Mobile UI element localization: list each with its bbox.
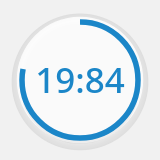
button[interactable]: Timer progress, 19:84 [0,0,160,160]
button[interactable]: 19:84 [35,56,125,104]
